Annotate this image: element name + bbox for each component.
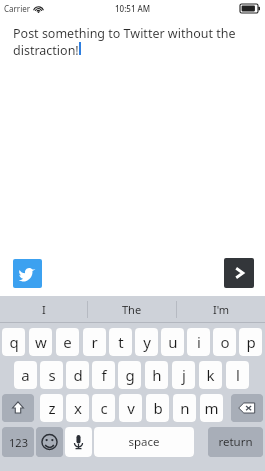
staticText: 10:51 AM — [115, 3, 151, 14]
button[interactable]: Post to Twitter — [13, 259, 42, 288]
button[interactable]: l — [226, 361, 249, 389]
staticText: x — [74, 398, 82, 418]
staticText: Carrier — [4, 3, 31, 14]
staticText: j — [182, 365, 186, 385]
button[interactable]: g — [118, 361, 141, 389]
button[interactable]: a — [14, 361, 37, 389]
button[interactable]: n — [173, 394, 196, 422]
staticText: i — [197, 332, 201, 352]
button[interactable]: Emoji — [36, 427, 63, 457]
staticText: c — [100, 398, 108, 418]
button[interactable]: The — [88, 296, 176, 323]
staticText: g — [125, 365, 135, 385]
button[interactable]: p — [239, 328, 262, 356]
staticText: p — [246, 332, 256, 352]
button[interactable]: i — [187, 328, 210, 356]
button[interactable]: m — [200, 394, 223, 422]
staticText: m — [204, 398, 219, 418]
button[interactable]: return — [208, 427, 263, 457]
button[interactable]: c — [92, 394, 115, 422]
staticText: return — [218, 434, 253, 450]
staticText: r — [91, 332, 98, 352]
button[interactable]: I'm — [177, 296, 265, 323]
staticText: b — [153, 398, 163, 418]
staticText: The — [122, 302, 142, 317]
staticText: z — [48, 398, 56, 418]
button[interactable]: h — [145, 361, 168, 389]
button[interactable]: d — [66, 361, 89, 389]
staticText: I — [42, 302, 46, 317]
button[interactable]: s — [40, 361, 63, 389]
staticText: e — [63, 332, 72, 352]
button[interactable]: w — [29, 328, 52, 356]
button[interactable]: t — [109, 328, 132, 356]
staticText: k — [206, 365, 215, 385]
button[interactable]: f — [92, 361, 115, 389]
button[interactable]: q — [2, 328, 25, 356]
button[interactable]: u — [161, 328, 184, 356]
button[interactable]: r — [83, 328, 106, 356]
button[interactable]: j — [172, 361, 195, 389]
staticText: o — [220, 332, 230, 352]
button[interactable]: space — [94, 427, 194, 457]
staticText: I'm — [213, 302, 230, 317]
staticText: d — [73, 365, 83, 385]
button[interactable]: 123 — [2, 427, 34, 457]
staticText: Post something to Twitter without the di… — [13, 25, 236, 58]
button[interactable]: Delete — [231, 394, 263, 422]
staticText: a — [21, 365, 30, 385]
button[interactable]: y — [135, 328, 158, 356]
staticText: l — [236, 365, 240, 385]
button[interactable]: o — [213, 328, 236, 356]
button[interactable]: x — [66, 394, 89, 422]
button[interactable]: e — [56, 328, 79, 356]
staticText: h — [152, 365, 162, 385]
staticText: w — [35, 332, 47, 352]
staticText: v — [127, 398, 135, 418]
button[interactable]: Dictate — [65, 427, 92, 457]
staticText: u — [168, 332, 178, 352]
staticText: q — [9, 332, 19, 352]
button[interactable]: v — [119, 394, 142, 422]
button[interactable]: Next — [224, 258, 254, 288]
staticText: n — [180, 398, 190, 418]
button[interactable]: k — [199, 361, 222, 389]
staticText: space — [128, 434, 160, 450]
button[interactable]: I — [0, 296, 87, 323]
staticText: 123 — [9, 435, 28, 450]
button[interactable]: z — [40, 394, 63, 422]
button[interactable]: b — [146, 394, 169, 422]
staticText: y — [143, 332, 151, 352]
staticText: f — [101, 365, 107, 385]
button[interactable]: Shift — [2, 394, 34, 422]
staticText: s — [48, 365, 56, 385]
staticText: t — [118, 332, 124, 352]
